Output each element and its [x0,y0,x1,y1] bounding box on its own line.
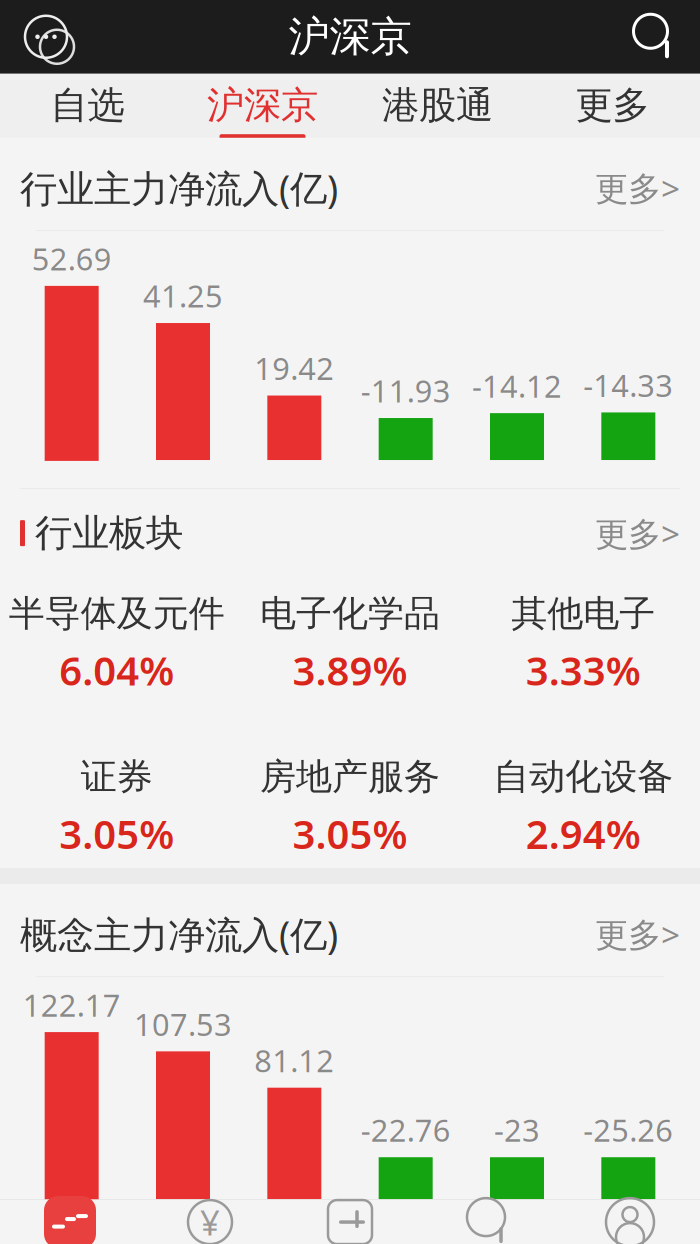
button[interactable]: 投顾 [420,1190,560,1244]
staticText: 行业板块 [35,510,183,556]
staticText: -11.93 [361,370,451,411]
button[interactable]: 行情 [0,1190,140,1244]
staticText: 电子化学品 [260,591,440,635]
staticText: 行业主力净流入(亿) [20,163,338,213]
staticText: ¥ [200,1199,220,1244]
staticText: 6.04% [59,643,174,697]
staticText: 更多> [595,166,680,210]
button[interactable]: ¥ [140,1190,280,1244]
staticText: 122.17 [23,984,121,1025]
staticText: -14.33 [583,365,673,405]
staticText: 更多> [595,912,680,956]
staticText: 自选 [50,82,124,128]
staticText: 半导体及元件 [9,591,225,635]
staticText: 证券 [81,755,153,799]
staticText: 沪深京 [207,82,318,128]
button[interactable]: 消息 [14,7,78,67]
staticText: 3.33% [526,643,641,697]
staticText: 沪深京 [288,11,411,62]
staticText: 自动化设备 [493,755,673,799]
staticText: -25.26 [583,1109,673,1150]
staticText: 107.53 [134,1004,232,1044]
button[interactable]: 更多> [581,505,680,561]
button[interactable]: 电子化学品 [233,583,467,705]
button[interactable]: 更多 [525,74,700,138]
button[interactable]: 自选 [0,74,175,138]
button[interactable]: 半导体及元件 [0,583,233,705]
button[interactable]: 港股通 [350,74,525,138]
staticText: -23 [494,1109,540,1150]
staticText: 52.69 [32,238,112,279]
button[interactable]: 证券 [0,747,233,868]
staticText: 3.89% [292,643,407,697]
button[interactable]: 我的 [560,1190,700,1244]
staticText: 其他电子 [511,591,655,635]
staticText: 更多> [595,511,680,555]
button[interactable]: 其他电子 [467,583,700,705]
staticText: 港股通 [382,82,493,128]
staticText: 19.42 [254,348,334,388]
staticText: 81.12 [254,1040,334,1081]
button[interactable]: 自动化设备 [467,747,700,868]
staticText: 3.05% [59,807,174,860]
button[interactable]: 搜索 [626,8,686,66]
staticText: 2.94% [526,807,641,860]
button[interactable]: 更多> [581,906,680,962]
button[interactable]: 房地产服务 [233,747,467,868]
staticText: 41.25 [143,275,223,316]
staticText: 概念主力净流入(亿) [20,909,338,959]
button[interactable]: 发现 [280,1190,420,1244]
button[interactable]: 更多> [581,160,680,216]
staticText: 房地产服务 [260,755,440,799]
staticText: 3.05% [292,807,407,860]
staticText: 更多 [575,82,649,128]
button[interactable]: 沪深京 [175,74,350,138]
staticText: -14.12 [472,365,562,406]
staticText: -22.76 [361,1109,451,1150]
